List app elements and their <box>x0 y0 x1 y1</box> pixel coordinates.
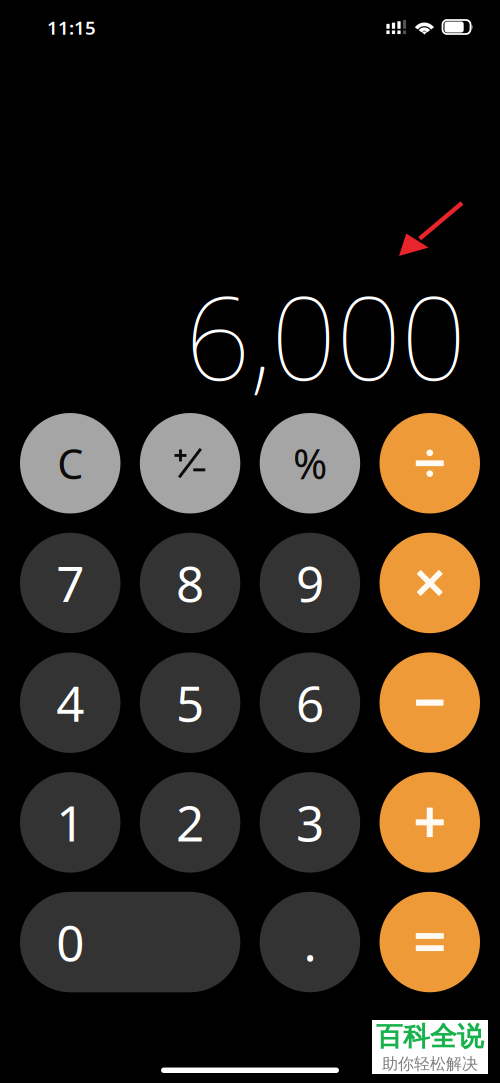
staticText: 1 <box>56 790 84 855</box>
staticText: 2 <box>176 790 204 855</box>
staticText: 8 <box>176 550 204 616</box>
button[interactable]: Multiply <box>379 533 480 633</box>
button[interactable]: % <box>260 413 360 513</box>
staticText: 5 <box>176 670 204 735</box>
staticText: 百科全说 <box>376 1020 484 1053</box>
button[interactable]: 4 <box>20 652 120 753</box>
staticText: 4 <box>56 670 84 735</box>
staticText: 0 <box>56 909 84 975</box>
staticText: 9 <box>296 550 324 616</box>
staticText: 11:15 <box>47 15 96 40</box>
button[interactable]: 9 <box>260 533 360 633</box>
button[interactable]: 2 <box>140 772 240 873</box>
button[interactable]: Equals <box>379 892 480 992</box>
staticText: % <box>293 436 327 491</box>
button[interactable]: 0 <box>20 892 240 992</box>
button[interactable]: Divide <box>379 413 480 513</box>
button[interactable]: Minus <box>379 652 480 753</box>
staticText: 助你轻松解决 <box>382 1054 478 1074</box>
staticText: C <box>57 436 83 491</box>
button[interactable]: Plus <box>379 772 480 873</box>
staticText: 6 <box>296 670 324 735</box>
staticText: . <box>303 909 316 975</box>
button[interactable]: C <box>20 413 120 513</box>
button[interactable]: 6 <box>260 652 360 753</box>
staticText: 6,000 <box>185 260 466 412</box>
staticText: 7 <box>56 550 84 616</box>
button[interactable]: . <box>260 892 360 992</box>
button[interactable]: 3 <box>260 772 360 873</box>
button[interactable]: 7 <box>20 533 120 633</box>
button[interactable]: 5 <box>140 652 240 753</box>
button[interactable]: Plus Minus <box>140 413 240 513</box>
staticText: 3 <box>296 790 324 855</box>
button[interactable]: 8 <box>140 533 240 633</box>
button[interactable]: 1 <box>20 772 120 873</box>
